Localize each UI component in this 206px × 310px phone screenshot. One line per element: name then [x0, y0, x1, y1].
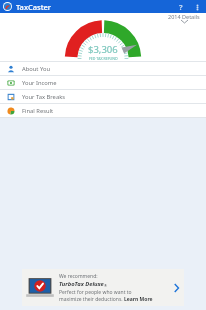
staticText: ®	[104, 283, 107, 288]
button[interactable]: Your Tax Breaks	[0, 90, 206, 103]
staticText: maximize their deductions.	[59, 296, 124, 303]
button[interactable]: Help	[175, 1, 187, 13]
staticText: Perfect for people who want to	[59, 289, 132, 296]
staticText: Your Income	[22, 79, 57, 87]
staticText: Final Result	[22, 107, 54, 115]
staticText: We recommend:	[59, 273, 98, 280]
staticText: TaxCaster	[16, 2, 52, 12]
staticText: About You	[22, 65, 51, 73]
button[interactable]: More options	[191, 1, 203, 13]
staticText: ?	[179, 2, 183, 12]
button[interactable]: Final Result	[0, 104, 206, 117]
staticText: 2014 Details	[168, 13, 200, 20]
staticText: FED TAX REFUND	[89, 56, 118, 61]
button[interactable]: Your Income	[0, 76, 206, 89]
staticText: Learn More	[124, 296, 153, 303]
button[interactable]: About You	[0, 62, 206, 75]
staticText: TurboTax Deluxe	[59, 280, 104, 288]
staticText: $3,306	[88, 43, 118, 56]
button[interactable]: 2014 Details	[168, 13, 200, 23]
button[interactable]: We recommend:	[22, 269, 184, 306]
button[interactable]: $3,306	[64, 25, 142, 61]
staticText: Your Tax Breaks	[22, 93, 66, 101]
button[interactable]: Open offer	[171, 283, 181, 293]
